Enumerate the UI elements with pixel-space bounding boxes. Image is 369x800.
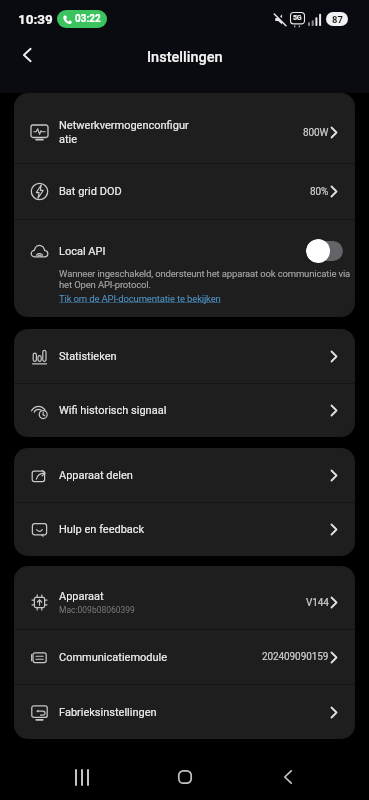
button[interactable]: Apparaat (14, 566, 355, 629)
staticText: Apparaat (59, 590, 104, 603)
button[interactable]: Statistieken (14, 329, 355, 383)
staticText: Local API (59, 245, 106, 258)
staticText: Instellingen (147, 49, 223, 66)
staticText: Fabrieksinstellingen (59, 706, 157, 719)
button[interactable] (306, 239, 343, 263)
button[interactable]: Tik om de API-documentatie te bekijken (59, 293, 221, 304)
button[interactable]: Netwerkvermogenconfigur atie (14, 93, 355, 163)
staticText: 202409090159 (262, 651, 329, 663)
button[interactable] (62, 757, 102, 797)
button[interactable]: Hulp en feedback (14, 503, 355, 556)
button[interactable]: Fabrieksinstellingen (14, 685, 355, 739)
button[interactable]: Wifi historisch signaal (14, 384, 355, 437)
staticText: 03:22 (75, 13, 101, 25)
staticText: Wifi historisch signaal (59, 404, 167, 417)
staticText: Apparaat delen (59, 469, 133, 482)
button[interactable] (165, 757, 205, 797)
staticText: Wanneer ingeschakeld, ondersteunt het ap… (59, 268, 351, 290)
button[interactable]: Apparaat delen (14, 448, 355, 502)
button[interactable]: Bat grid DOD (14, 164, 355, 219)
staticText: Statistieken (59, 350, 117, 363)
staticText: 800W (303, 127, 329, 139)
staticText: Communicatiemodule (59, 651, 168, 664)
button[interactable]: 03:22 (57, 10, 107, 28)
staticText: 80% (310, 186, 329, 198)
staticText: Bat grid DOD (59, 185, 122, 198)
button[interactable] (14, 42, 40, 68)
staticText: Mac:009b08060399 (59, 605, 135, 615)
staticText: Netwerkvermogenconfigur atie (59, 119, 189, 146)
staticText: V144 (306, 597, 329, 609)
staticText: 87 (332, 14, 343, 25)
button[interactable] (268, 757, 308, 797)
button[interactable]: Communicatiemodule (14, 630, 355, 684)
staticText: 5G (293, 14, 302, 22)
staticText: 10:39 (18, 11, 53, 27)
staticText: Hulp en feedback (59, 523, 145, 536)
